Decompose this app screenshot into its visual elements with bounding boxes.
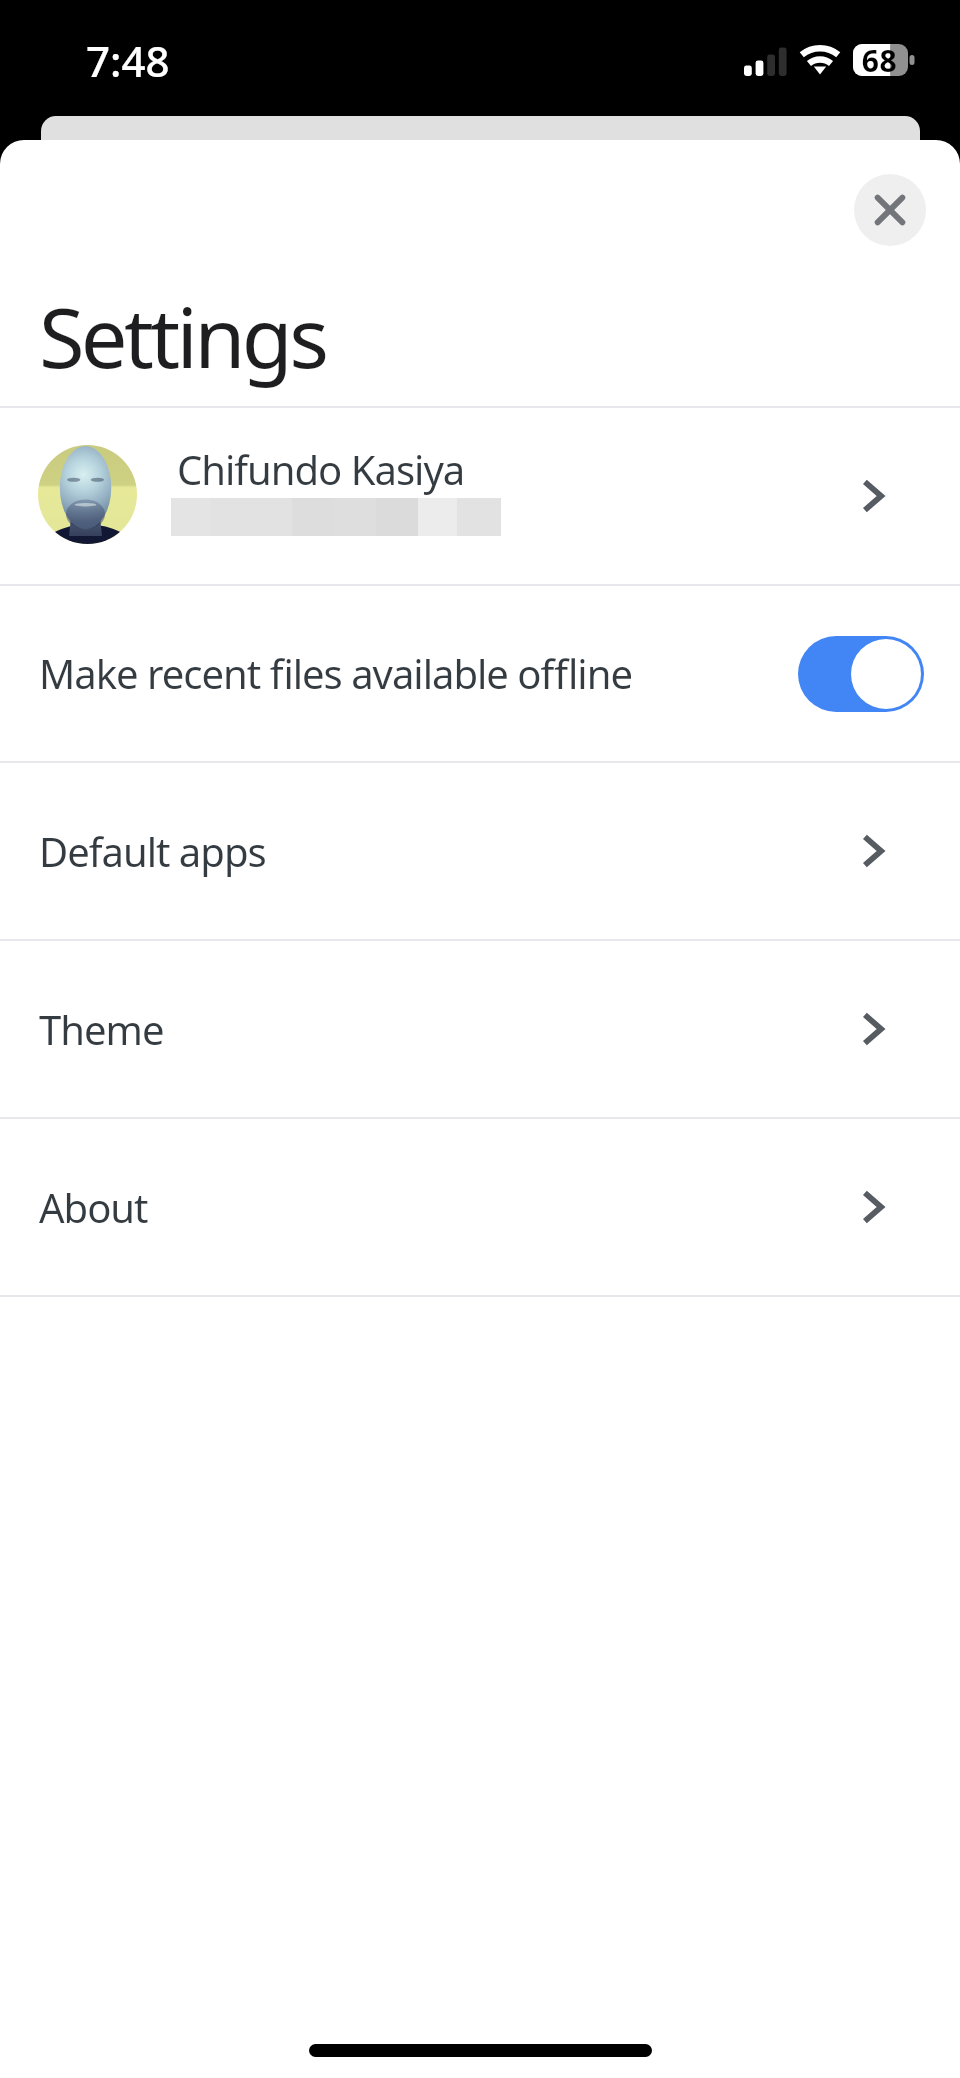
staticText: 7:48 <box>86 32 170 89</box>
staticText: Default apps <box>39 824 862 878</box>
button[interactable]: Make recent files available offline <box>798 636 924 712</box>
button[interactable]: Default apps <box>0 763 960 939</box>
button[interactable]: About <box>0 1119 960 1295</box>
staticText: Theme <box>39 1002 862 1056</box>
staticText: About <box>39 1180 862 1234</box>
staticText: Settings <box>39 279 326 392</box>
staticText: 68 <box>854 40 905 81</box>
staticText: Make recent files available offline <box>39 646 798 700</box>
button[interactable]: Theme <box>0 941 960 1117</box>
staticText: Chifundo Kasiya <box>177 442 465 496</box>
button[interactable]: Chifundo Kasiya <box>0 408 960 584</box>
button[interactable]: Close <box>854 174 926 246</box>
button[interactable]: Make recent files available offline <box>0 586 960 761</box>
